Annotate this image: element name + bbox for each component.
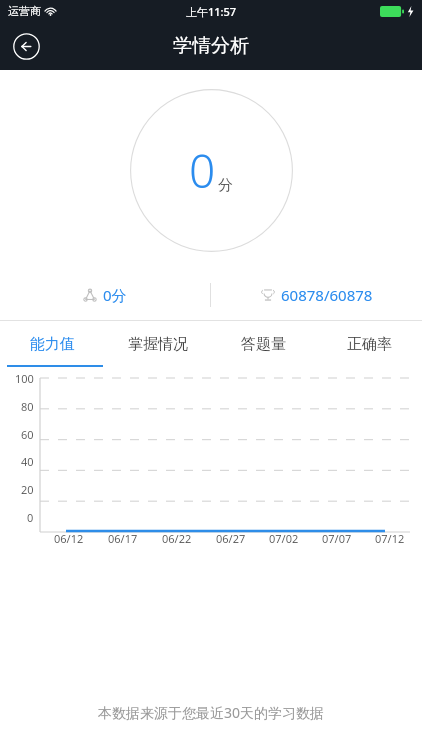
staticText: 正确率: [347, 335, 392, 354]
staticText: 06/27: [216, 531, 246, 546]
button[interactable]: Back: [10, 30, 42, 62]
staticText: 运营商: [8, 4, 41, 18]
staticText: 60878/60878: [281, 285, 373, 305]
staticText: 06/17: [108, 531, 138, 546]
staticText: 本数据来源于您最近30天的学习数据: [0, 703, 422, 722]
staticText: 掌握情况: [128, 335, 188, 354]
staticText: 20: [21, 482, 34, 497]
staticText: 学情分析: [173, 34, 249, 58]
staticText: 0: [189, 139, 216, 202]
staticText: 40: [21, 454, 34, 469]
staticText: 80: [21, 399, 34, 414]
staticText: 60: [21, 427, 34, 442]
staticText: 07/07: [322, 531, 352, 546]
staticText: 07/12: [375, 531, 405, 546]
button[interactable]: 能力值: [0, 321, 105, 367]
staticText: 100: [15, 371, 34, 386]
staticText: 分: [218, 176, 233, 195]
staticText: 答题量: [241, 335, 286, 354]
staticText: 能力值: [30, 335, 75, 354]
button[interactable]: 正确率: [316, 321, 422, 367]
staticText: 06/12: [54, 531, 84, 546]
button[interactable]: 掌握情况: [105, 321, 210, 367]
button[interactable]: 答题量: [210, 321, 316, 367]
staticText: 0分: [103, 285, 127, 305]
staticText: 06/22: [162, 531, 192, 546]
staticText: 0: [27, 510, 34, 525]
staticText: 07/02: [269, 531, 299, 546]
staticText: 上午11:57: [186, 4, 237, 19]
